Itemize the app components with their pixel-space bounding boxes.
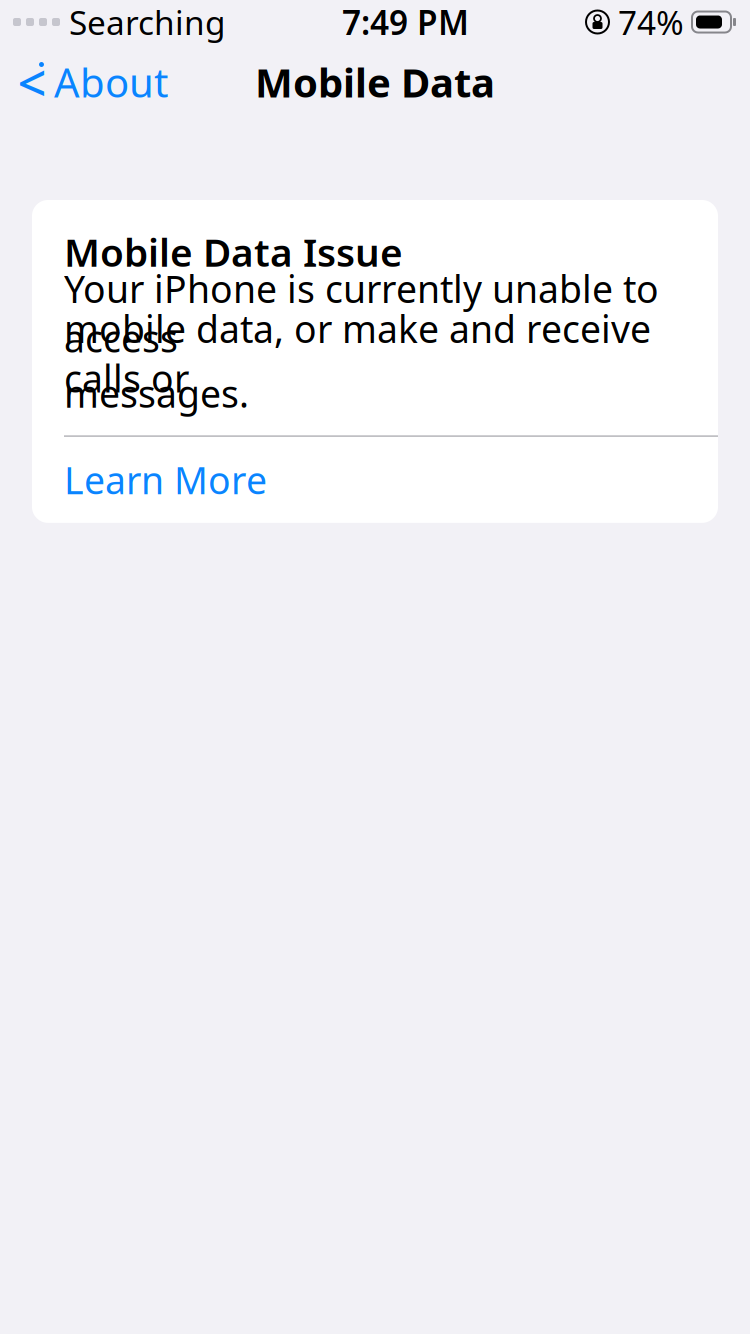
staticText: 7:49 PM: [342, 0, 469, 44]
button[interactable]: Learn More: [32, 437, 718, 523]
button[interactable]: <: [0, 52, 182, 112]
staticText: Learn More: [64, 455, 267, 505]
staticText: messages.: [64, 369, 249, 418]
staticText: Mobile Data: [255, 55, 495, 108]
staticText: Your iPhone is currently unable to acces…: [64, 264, 659, 363]
staticText: About: [54, 55, 168, 108]
staticText: 74%: [618, 0, 684, 44]
staticText: <: [17, 48, 46, 116]
staticText: Searching: [69, 0, 226, 44]
staticText: mobile data, or make and receive calls o…: [64, 304, 651, 403]
staticText: Mobile Data Issue: [64, 226, 403, 277]
